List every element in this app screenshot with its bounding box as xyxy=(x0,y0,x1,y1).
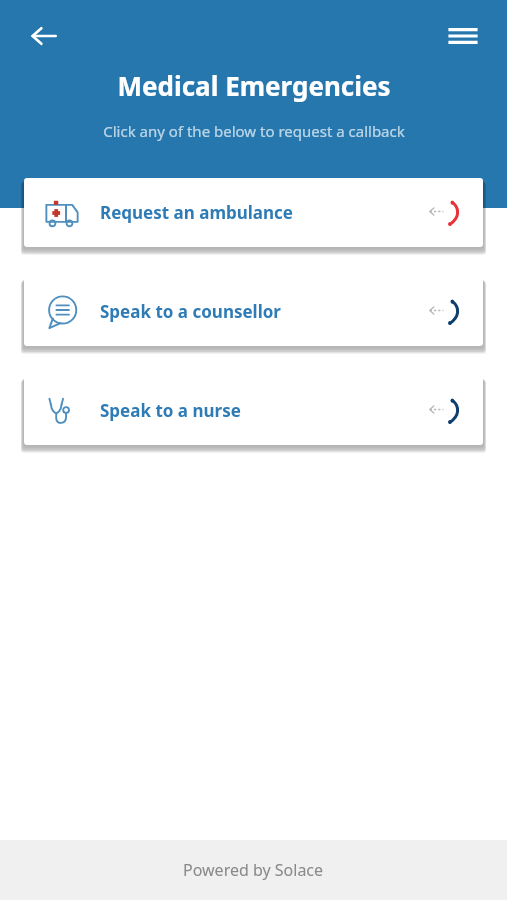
button[interactable]: Back xyxy=(22,14,66,58)
staticText: Speak to a nurse xyxy=(100,399,407,422)
staticText: Medical Emergencies xyxy=(117,68,391,103)
staticText: Request an ambulance xyxy=(100,201,407,224)
staticText: Speak to a counsellor xyxy=(100,300,407,323)
button[interactable]: Speak to a nurse xyxy=(24,376,483,445)
staticText: Click any of the below to request a call… xyxy=(103,121,405,141)
button[interactable]: Request an ambulance xyxy=(24,178,483,247)
staticText: Powered by Solace xyxy=(183,859,324,881)
button[interactable]: Menu xyxy=(441,14,485,58)
button[interactable]: Speak to a counsellor xyxy=(24,277,483,346)
